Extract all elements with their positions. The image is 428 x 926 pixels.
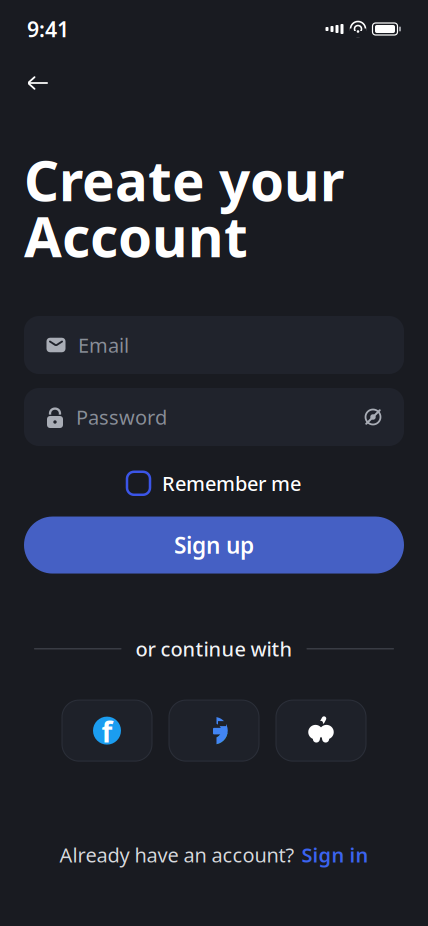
staticText: f bbox=[101, 713, 112, 750]
button[interactable]: Sign up bbox=[24, 517, 404, 574]
button[interactable]: Show password bbox=[358, 402, 388, 432]
button[interactable]: Continue with Google bbox=[169, 700, 259, 761]
staticText: Create your bbox=[24, 144, 344, 216]
button[interactable]: Remember me bbox=[123, 464, 305, 503]
staticText: Already have an account? bbox=[59, 841, 294, 868]
staticText: 9:41 bbox=[27, 15, 69, 43]
button[interactable]: Continue with Facebook bbox=[62, 700, 152, 761]
staticText: Account bbox=[24, 200, 248, 272]
staticText: Remember me bbox=[162, 470, 301, 497]
staticText: Sign in bbox=[301, 841, 368, 868]
staticText: Password bbox=[76, 404, 167, 430]
button[interactable]: Continue with Apple bbox=[276, 700, 366, 761]
button[interactable]: Back bbox=[16, 66, 60, 100]
staticText: or continue with bbox=[135, 636, 292, 662]
button[interactable]: Already have an account? bbox=[49, 833, 378, 876]
staticText: Sign up bbox=[174, 530, 254, 560]
staticText: Email bbox=[78, 332, 129, 358]
